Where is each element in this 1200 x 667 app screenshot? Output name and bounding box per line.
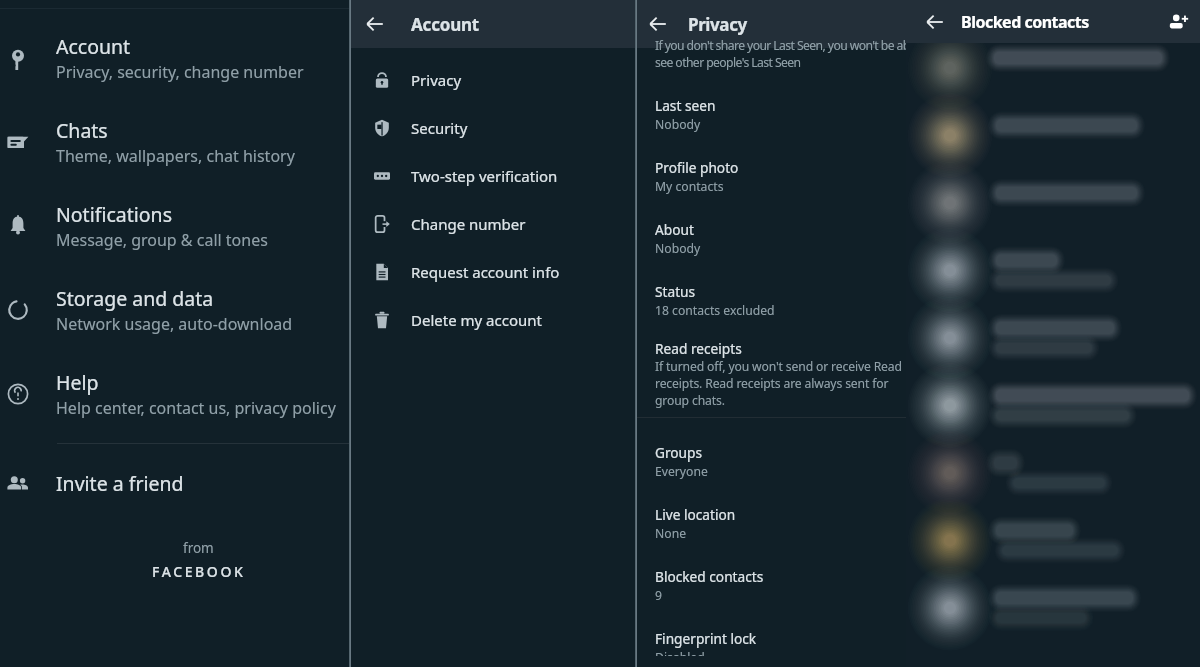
button[interactable]: Back: [913, 0, 956, 43]
staticText: Profile photo: [655, 158, 739, 177]
button[interactable]: Blocked contacts: [655, 542, 906, 604]
button[interactable]: Account: [0, 16, 350, 100]
staticText: group chats.: [655, 392, 725, 409]
staticText: Privacy, security, change number: [56, 61, 304, 83]
staticText: Account: [411, 13, 480, 36]
staticText: Account: [56, 33, 131, 60]
staticText: receipts. Read receipts are always sent …: [655, 375, 889, 392]
button[interactable]: Chats: [0, 100, 350, 184]
button[interactable]: Two-step verification: [350, 152, 636, 200]
staticText: Storage and data: [56, 285, 214, 312]
staticText: Nobody: [655, 116, 701, 133]
staticText: Notifications: [56, 201, 172, 228]
button[interactable]: Back: [636, 2, 680, 46]
button[interactable]: Add blocked contact: [1157, 0, 1200, 43]
staticText: If you don't share your Last Seen, you w…: [655, 37, 906, 54]
staticText: Nobody: [655, 240, 701, 257]
staticText: Delete my account: [411, 310, 542, 330]
staticText: Change number: [411, 214, 526, 234]
staticText: Groups: [655, 443, 703, 462]
staticText: Privacy: [688, 13, 747, 36]
staticText: Invite a friend: [56, 470, 184, 497]
button[interactable]: Privacy: [350, 56, 636, 104]
button[interactable]: Notifications: [0, 184, 350, 268]
staticText: Fingerprint lock: [655, 629, 757, 648]
staticText: Security: [411, 118, 468, 138]
staticText: About: [655, 220, 694, 239]
staticText: Blocked contacts: [961, 11, 1089, 33]
staticText: Everyone: [655, 463, 708, 480]
staticText: Chats: [56, 117, 108, 144]
button[interactable]: Live location: [655, 480, 906, 542]
staticText: Read receipts: [655, 339, 742, 358]
staticText: from: [183, 539, 214, 557]
button[interactable]: Back: [353, 2, 397, 46]
button[interactable]: Delete my account: [350, 296, 636, 344]
staticText: None: [655, 525, 687, 542]
staticText: 18 contacts excluded: [655, 302, 775, 319]
button[interactable]: Last seen: [655, 71, 906, 133]
staticText: Blocked contacts: [655, 567, 764, 586]
staticText: Request account info: [411, 262, 560, 282]
staticText: Two-step verification: [411, 166, 558, 186]
staticText: FACEBOOK: [152, 562, 246, 581]
button[interactable]: Help: [0, 352, 350, 436]
staticText: My contacts: [655, 178, 724, 195]
button[interactable]: Groups: [655, 418, 906, 480]
button[interactable]: Security: [350, 104, 636, 152]
button[interactable]: Profile photo: [655, 133, 906, 195]
staticText: Help center, contact us, privacy policy: [56, 397, 336, 419]
staticText: see other people's Last Seen: [655, 54, 801, 71]
button[interactable]: About: [655, 195, 906, 257]
staticText: Message, group & call tones: [56, 229, 268, 251]
button[interactable]: Invite a friend: [0, 444, 350, 523]
staticText: 9: [655, 587, 662, 604]
staticText: If turned off, you won't send or receive…: [655, 358, 902, 375]
staticText: Last seen: [655, 96, 716, 115]
button[interactable]: Status: [655, 257, 906, 319]
staticText: Live location: [655, 505, 736, 524]
staticText: Help: [56, 369, 99, 396]
button[interactable]: Fingerprint lock: [655, 604, 906, 656]
button[interactable]: Request account info: [350, 248, 636, 296]
staticText: Privacy: [411, 70, 462, 90]
staticText: Disabled: [655, 649, 705, 656]
button[interactable]: Storage and data: [0, 268, 350, 352]
staticText: Theme, wallpapers, chat history: [56, 145, 295, 167]
staticText: Network usage, auto-download: [56, 313, 293, 335]
staticText: Status: [655, 282, 696, 301]
button[interactable]: Change number: [350, 200, 636, 248]
